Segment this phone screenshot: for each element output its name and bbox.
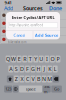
staticText: X — [20, 75, 23, 83]
button[interactable]: Y — [33, 55, 38, 62]
staticText: Q — [6, 55, 10, 63]
button[interactable]: W — [11, 55, 16, 62]
button[interactable]: V — [31, 75, 35, 82]
button[interactable]: Shift — [7, 75, 13, 82]
button[interactable]: S — [14, 65, 19, 72]
staticText: Sources — [23, 5, 43, 12]
staticText: F — [26, 65, 29, 73]
button[interactable]: 123 — [4, 85, 12, 92]
staticText: G — [31, 65, 35, 73]
button[interactable]: K — [47, 65, 52, 72]
button[interactable]: E — [17, 55, 22, 62]
button[interactable]: CyclingNews — [1, 19, 66, 27]
staticText: C — [26, 75, 29, 83]
button[interactable]: I — [44, 55, 49, 62]
button[interactable]: Cyclist — [1, 11, 66, 19]
button[interactable]: BikeRadar — [1, 36, 66, 43]
staticText: CyclingNews — [8, 19, 31, 24]
button[interactable]: T — [28, 55, 33, 62]
staticText: Y — [34, 55, 37, 63]
staticText: Add — [4, 5, 13, 12]
button[interactable]: Go — [51, 85, 62, 92]
staticText: Done — [49, 5, 62, 12]
staticText: http://yoursite.com/feed — [9, 23, 43, 27]
staticText: road.cc — [8, 27, 21, 32]
staticText: W — [11, 55, 16, 63]
staticText: 123 — [5, 86, 11, 92]
staticText: U — [39, 55, 43, 63]
staticText: N — [42, 75, 46, 83]
staticText: road.cc/rss — [8, 32, 21, 36]
staticText: E — [18, 55, 21, 63]
staticText: H — [37, 65, 41, 73]
staticText: L — [54, 65, 57, 73]
staticText: cyclingnews.com — [8, 24, 29, 28]
button[interactable]: H — [36, 65, 41, 72]
staticText: BikeRadar — [8, 35, 26, 40]
staticText: S — [15, 65, 18, 73]
staticText: Cancel — [13, 32, 25, 38]
staticText: M — [47, 75, 52, 83]
button[interactable]: space — [19, 85, 42, 92]
button[interactable]: O — [50, 55, 55, 62]
button[interactable]: C — [25, 75, 30, 82]
button[interactable]: F — [25, 65, 30, 72]
button[interactable]: L — [53, 65, 58, 72]
button[interactable]: G — [31, 65, 35, 72]
button[interactable]: Q — [6, 55, 10, 62]
button[interactable]: U — [39, 55, 44, 62]
button[interactable]: Z — [14, 75, 19, 82]
button[interactable]: Delete — [53, 75, 59, 82]
button[interactable]: J — [42, 65, 47, 72]
staticText: O — [50, 55, 54, 63]
button[interactable]: Next keyboard — [13, 85, 18, 92]
button[interactable]: road.cc — [1, 27, 66, 35]
staticText: cyclist.co.uk — [8, 16, 23, 20]
staticText: V — [31, 75, 34, 83]
staticText: bikeradar.com — [8, 40, 26, 44]
button[interactable]: B — [36, 75, 41, 82]
staticText: J — [44, 65, 45, 73]
button[interactable]: M — [47, 75, 52, 82]
button[interactable]: Add Source — [33, 31, 60, 39]
staticText: Z — [15, 75, 18, 83]
button[interactable]: N — [42, 75, 47, 82]
staticText: K — [48, 65, 51, 73]
button[interactable]: D — [19, 65, 24, 72]
button[interactable]: Done — [48, 5, 63, 11]
staticText: B — [37, 75, 40, 83]
staticText: Cyclist — [8, 11, 20, 16]
staticText: D — [20, 65, 24, 73]
staticText: Enter Cyclist/AFT URL — [11, 15, 54, 20]
staticText: R — [23, 55, 26, 63]
button[interactable]: X — [19, 75, 24, 82]
button[interactable]: .com — [43, 85, 51, 92]
staticText: I — [46, 55, 48, 63]
button[interactable]: A — [8, 65, 13, 72]
staticText: T — [29, 55, 32, 63]
staticText: P — [56, 55, 59, 63]
button[interactable]: P — [55, 55, 60, 62]
staticText: 9:41 — [4, 0, 11, 5]
button[interactable]: Add — [3, 5, 14, 11]
staticText: .com — [44, 84, 50, 94]
button[interactable]: R — [22, 55, 27, 62]
staticText: Go — [54, 86, 59, 92]
staticText: space — [25, 86, 35, 92]
staticText: Add Source — [35, 32, 58, 38]
staticText: A — [9, 65, 12, 73]
button[interactable]: Cancel — [6, 31, 33, 39]
